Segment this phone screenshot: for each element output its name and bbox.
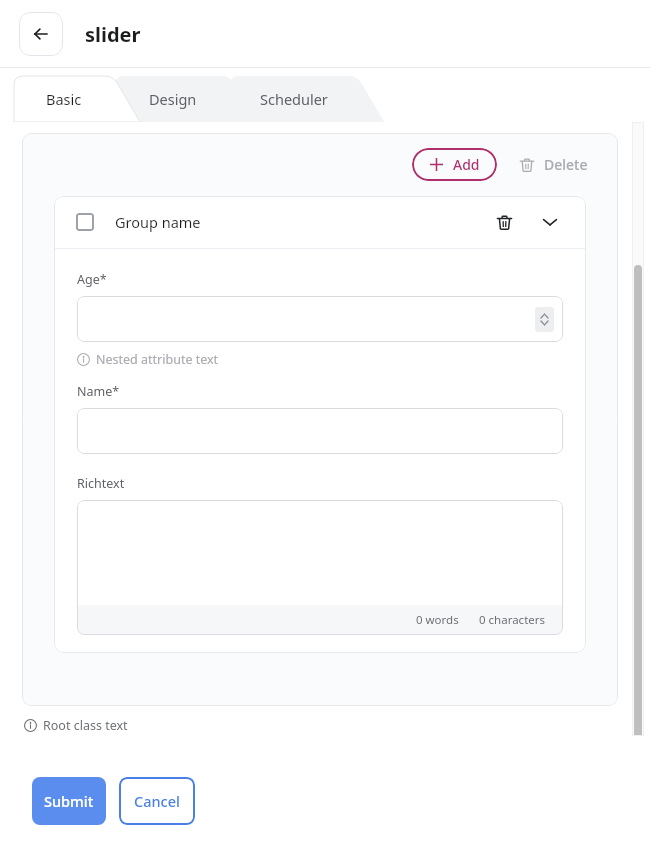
button[interactable]: Select group	[54, 196, 586, 248]
button[interactable]: Collapse group	[536, 208, 564, 236]
button[interactable]: Step value	[535, 307, 554, 332]
staticText: Scheduler	[260, 89, 328, 109]
button[interactable]: Basic	[14, 76, 140, 122]
staticText: 0 words	[416, 612, 459, 628]
staticText: Add	[453, 155, 480, 174]
button[interactable]: Cancel	[119, 777, 195, 825]
button[interactable]	[77, 408, 563, 454]
staticText: Nested attribute text	[96, 351, 219, 368]
button[interactable]: Back	[19, 12, 63, 56]
button[interactable]: Select group	[76, 213, 94, 231]
button[interactable]: Delete group	[490, 208, 518, 236]
staticText: Root class text	[43, 717, 128, 734]
staticText: Age*	[77, 271, 107, 288]
staticText: slider	[85, 21, 141, 48]
staticText: Design	[149, 89, 197, 109]
button[interactable]: 0 words	[77, 500, 563, 635]
button[interactable]: Delete	[515, 149, 592, 180]
staticText: Basic	[46, 89, 82, 109]
button[interactable]: Step value	[77, 296, 563, 342]
staticText: Richtext	[77, 475, 125, 492]
button[interactable]: Add	[412, 148, 497, 181]
staticText: 0 characters	[479, 612, 546, 628]
staticText: Name*	[77, 383, 120, 400]
staticText: Delete	[544, 155, 588, 174]
button[interactable]: Design	[115, 76, 257, 122]
staticText: Submit	[44, 791, 94, 811]
staticText: Group name	[115, 212, 201, 232]
staticText: Cancel	[134, 791, 180, 811]
button[interactable]: Scheduler	[230, 76, 384, 122]
button[interactable]: Submit	[32, 777, 106, 825]
